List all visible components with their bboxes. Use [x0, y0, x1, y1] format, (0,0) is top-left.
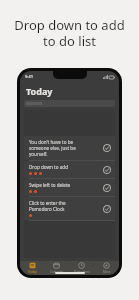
- button[interactable]: Search: [24, 100, 115, 107]
- button[interactable]: Complete task: [103, 166, 111, 174]
- staticText: Pomodoro: [74, 270, 90, 274]
- button[interactable]: Pomodoro: [69, 261, 94, 275]
- button[interactable]: Complete task: [103, 205, 111, 213]
- button[interactable]: Complete task: [103, 144, 111, 152]
- staticText: Drop down to add: [29, 164, 68, 170]
- staticText: someone else, just be: [29, 145, 76, 151]
- staticText: Swipe left to delete: [29, 182, 71, 188]
- button[interactable]: Click to enter the: [24, 197, 115, 220]
- button[interactable]: Today: [20, 261, 44, 275]
- staticText: yourself.: [29, 151, 48, 157]
- button[interactable]: More: [94, 261, 119, 275]
- staticText: Drop down to add to do list: [10, 16, 129, 49]
- staticText: 9:41: [25, 74, 33, 79]
- staticText: Today: [26, 85, 53, 97]
- button[interactable]: You don't have to be: [24, 136, 115, 160]
- staticText: Pomodoro Clock: [29, 206, 65, 212]
- staticText: More: [103, 270, 111, 274]
- button[interactable]: Calendar: [44, 261, 69, 275]
- button[interactable]: Swipe left to delete: [24, 179, 115, 196]
- staticText: Click to enter the: [29, 200, 66, 206]
- staticText: You don't have to be: [29, 139, 74, 145]
- button[interactable]: Drop down to add: [24, 161, 115, 178]
- staticText: Today: [28, 270, 37, 274]
- button[interactable]: Complete task: [103, 184, 111, 192]
- staticText: Calendar: [50, 270, 64, 274]
